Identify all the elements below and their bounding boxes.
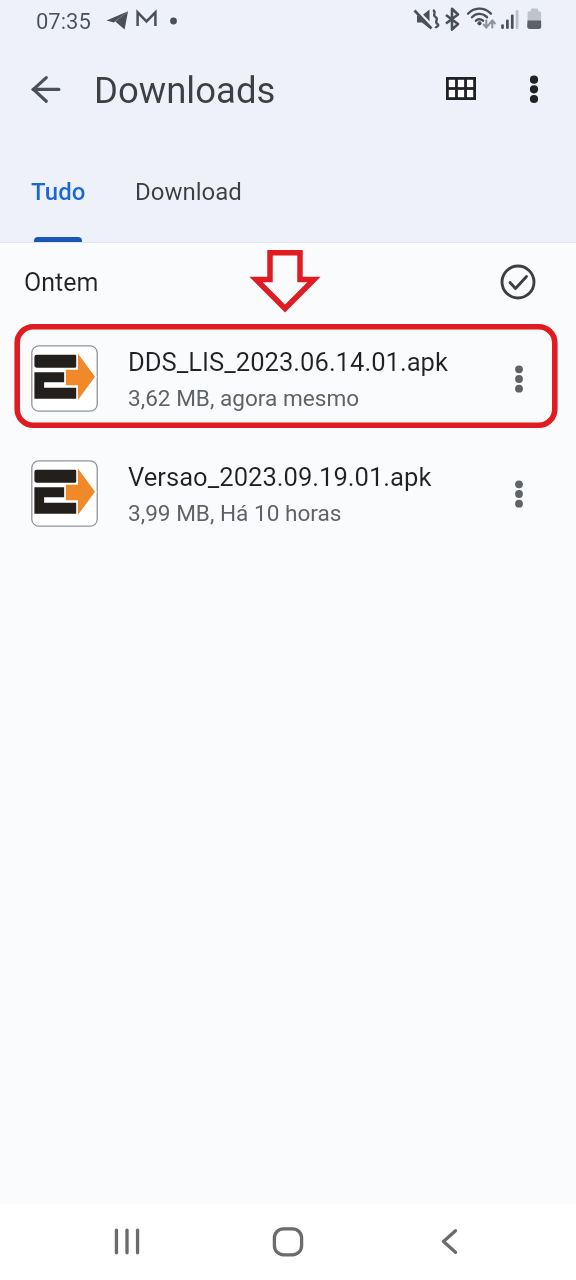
button[interactable]: Grid view [438,65,484,111]
button[interactable]: More options [512,65,558,111]
button[interactable]: Back [414,1206,486,1278]
staticText: Versao_2023.09.19.01.apk [128,462,432,492]
staticText: DDS_LIS_2023.06.14.01.apk [128,347,448,377]
button[interactable]: Versao_2023.09.19.01.apk [0,436,576,551]
staticText: 3,99 MB, Há 10 horas [128,500,342,526]
button[interactable]: DDS_LIS_2023.06.14.01.apk [0,321,576,436]
staticText: Tudo [31,178,86,206]
staticText: Ontem [24,268,99,297]
button[interactable]: Download [113,152,263,243]
button[interactable]: More options [491,466,547,522]
staticText: 07:35 [36,9,91,35]
button[interactable]: Back [22,65,68,111]
staticText: Downloads [94,69,276,112]
button[interactable]: More options [491,351,547,407]
button[interactable]: Recent apps [90,1206,162,1278]
staticText: 3,62 MB, agora mesmo [128,385,360,411]
button[interactable]: Select all [495,259,541,305]
button[interactable]: Home [252,1206,324,1278]
staticText: Download [135,178,242,206]
button[interactable]: Tudo [9,152,107,243]
